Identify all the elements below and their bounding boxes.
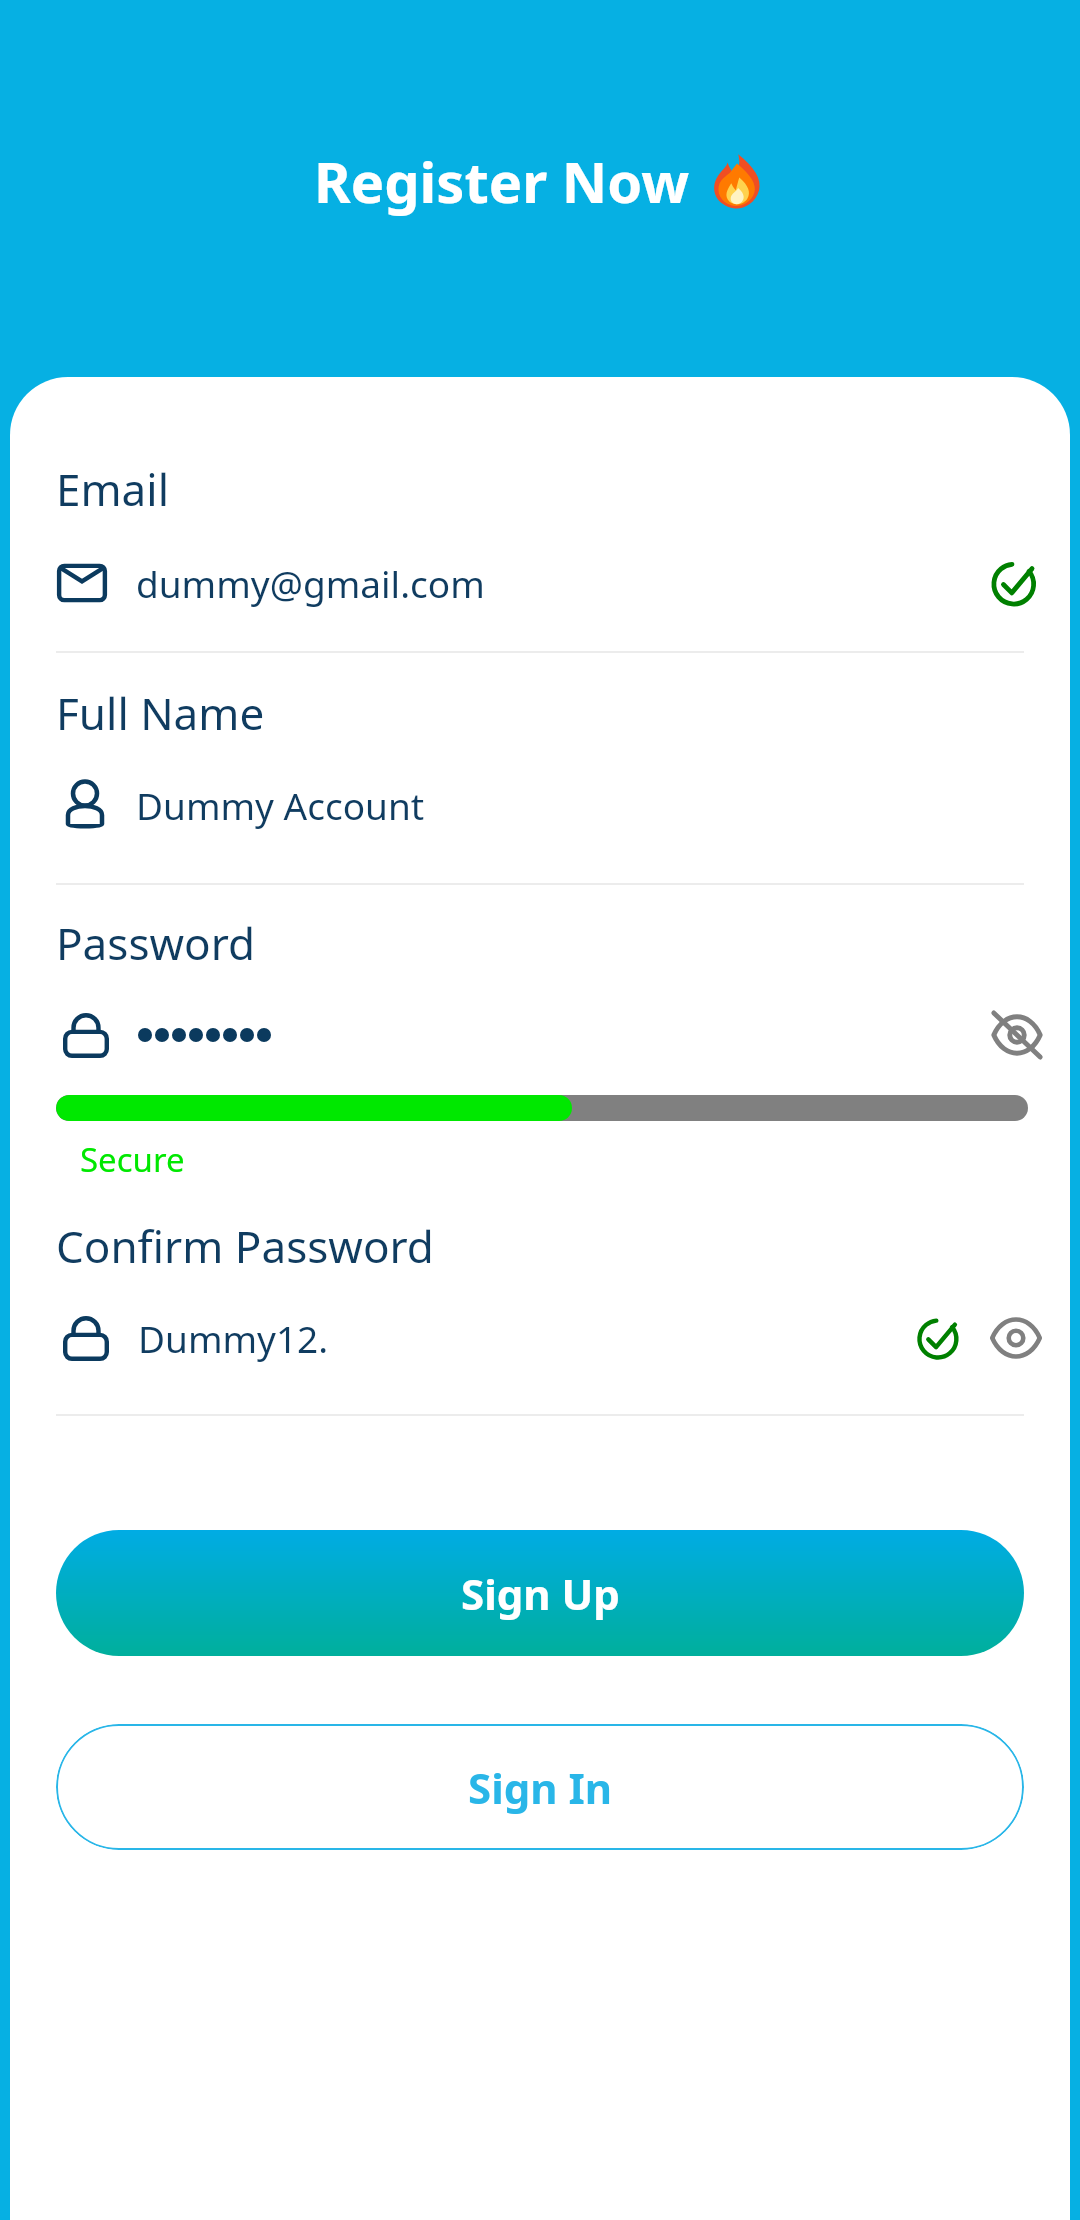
staticText: Full Name [56, 683, 265, 743]
button[interactable]: Hide password [10, 999, 1070, 1071]
staticText: Sign Up [461, 1565, 620, 1622]
button[interactable]: Dummy Account [10, 769, 1070, 841]
staticText: Sign In [468, 1759, 613, 1816]
button[interactable]: Hide password [982, 1000, 1052, 1070]
button[interactable]: dummy@gmail.com [10, 547, 1070, 619]
button[interactable]: Sign In [56, 1724, 1024, 1850]
staticText: Dummy12. [138, 1313, 329, 1363]
staticText: dummy@gmail.com [136, 558, 485, 608]
button[interactable]: Show password [984, 1306, 1048, 1370]
staticText: Register Now [314, 143, 690, 219]
staticText: Confirm Password [56, 1216, 434, 1276]
staticText: Dummy Account [136, 780, 425, 830]
button[interactable]: Email valid [984, 551, 1048, 615]
button[interactable]: Sign Up [56, 1530, 1024, 1656]
staticText: Secure [80, 1137, 185, 1182]
button[interactable]: Dummy12. [10, 1302, 1070, 1374]
staticText: Email [56, 459, 169, 519]
button[interactable]: Passwords match [908, 1306, 972, 1370]
staticText: Password [56, 913, 256, 973]
